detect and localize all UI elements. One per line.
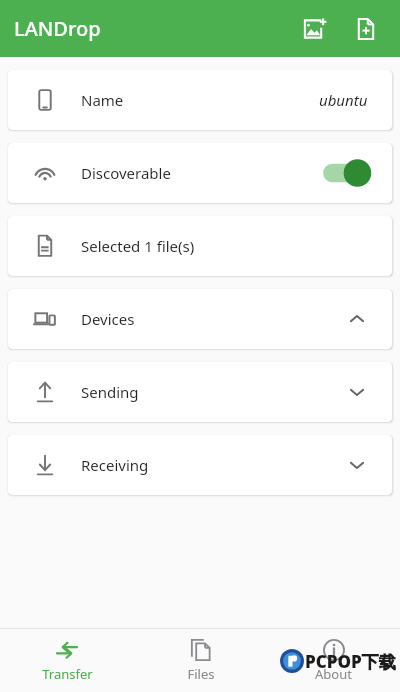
button[interactable]: Transfer bbox=[0, 629, 134, 692]
button[interactable]: Add image bbox=[292, 7, 336, 51]
button[interactable]: Discoverable bbox=[8, 143, 392, 203]
staticText: Selected 1 file(s) bbox=[81, 236, 372, 256]
staticText: LANDrop bbox=[14, 15, 101, 42]
staticText: Receiving bbox=[81, 455, 346, 475]
button[interactable]: Name bbox=[8, 70, 392, 130]
staticText: Transfer bbox=[42, 665, 93, 683]
staticText: Name bbox=[81, 90, 319, 110]
staticText: About bbox=[315, 665, 352, 683]
button[interactable]: Discoverable toggle bbox=[320, 158, 372, 188]
button[interactable]: Devices bbox=[8, 289, 392, 349]
button[interactable]: Selected 1 file(s) bbox=[8, 216, 392, 276]
staticText: Discoverable bbox=[81, 163, 320, 183]
button[interactable]: About bbox=[267, 629, 400, 692]
button[interactable]: Files bbox=[134, 629, 267, 692]
button[interactable]: Receiving bbox=[8, 435, 392, 495]
staticText: Devices bbox=[81, 309, 346, 329]
staticText: ubuntu bbox=[319, 90, 368, 110]
button[interactable]: Sending bbox=[8, 362, 392, 422]
button[interactable]: Add file bbox=[344, 7, 388, 51]
staticText: PCPOP下载 bbox=[305, 650, 396, 673]
staticText: Sending bbox=[81, 382, 346, 402]
staticText: Files bbox=[187, 665, 215, 683]
